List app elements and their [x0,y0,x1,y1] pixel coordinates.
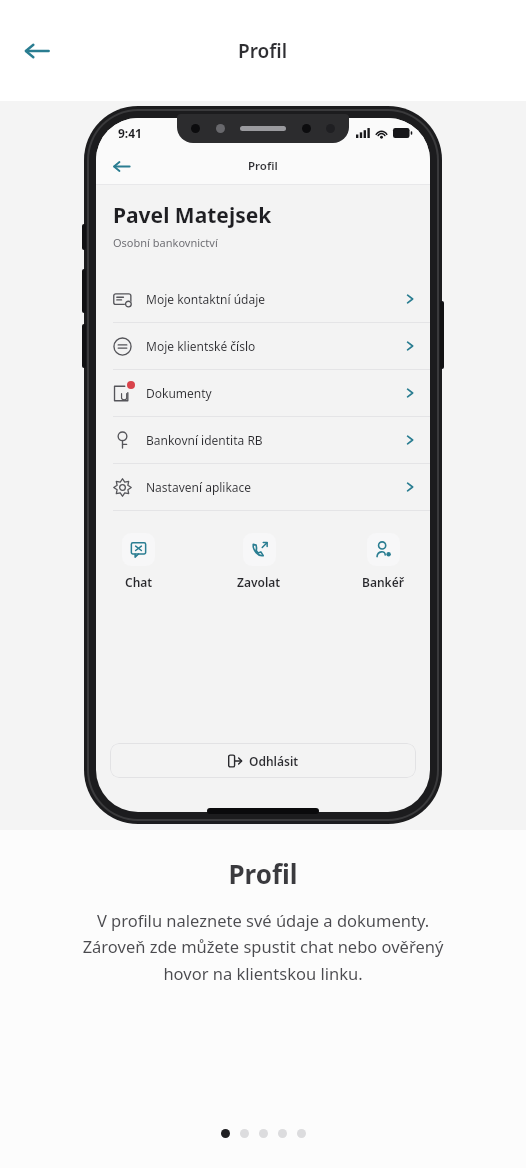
staticText: Pavel Matejsek [113,201,272,230]
button[interactable]: Back [106,151,136,181]
staticText: Odhlásit [249,753,299,769]
button[interactable]: Dokumenty [96,370,430,416]
button[interactable]: Nastavení aplikace [96,464,430,510]
staticText: Bankéř [362,574,404,590]
staticText: V profilu naleznete své údaje a dokument… [26,909,500,985]
staticText: Profil [238,38,288,64]
button[interactable]: Back [14,28,60,74]
staticText: Osobní bankovnictví [113,235,218,250]
button[interactable]: Moje klientské číslo [96,323,430,369]
staticText: Zavolat [237,574,281,590]
button[interactable]: Odhlásit [110,743,416,778]
staticText: Nastavení aplikace [146,479,252,495]
staticText: 9:41 [118,125,142,141]
button[interactable]: Chat [122,533,155,590]
staticText: Bankovní identita RB [146,432,263,448]
button[interactable]: Call [237,533,281,590]
staticText: Chat [125,574,153,590]
staticText: Profil [0,856,526,891]
staticText: Dokumenty [146,385,212,401]
button[interactable]: Banker [362,533,404,590]
staticText: Moje klientské číslo [146,338,256,354]
staticText: Profil [248,158,278,174]
staticText: Moje kontaktní údaje [146,291,266,307]
button[interactable]: Moje kontaktní údaje [96,276,430,322]
button[interactable]: Bankovní identita RB [96,417,430,463]
